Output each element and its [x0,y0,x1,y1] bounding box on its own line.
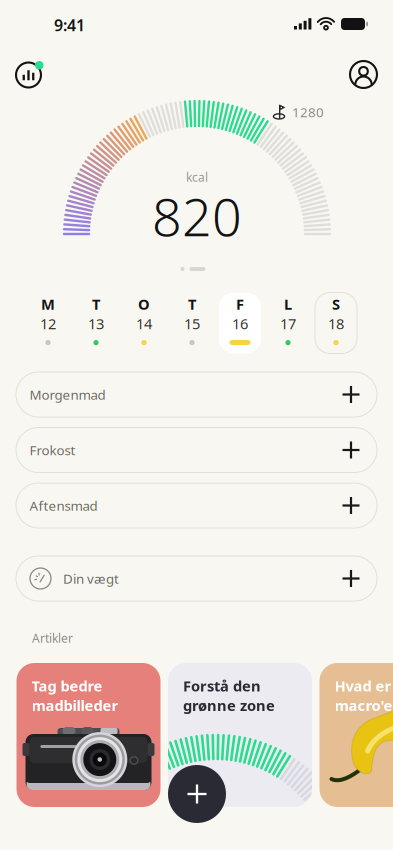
button[interactable]: O [120,291,168,355]
staticText: Tag bedre madbilleder [31,676,118,715]
button[interactable]: M [24,291,72,355]
button[interactable]: F [216,291,264,355]
staticText: 1280 [292,103,324,121]
button[interactable]: Hvad er macro'er [319,663,393,807]
button[interactable]: Profil [350,61,377,88]
staticText: F [236,294,244,314]
staticText: Frokost [29,441,75,459]
button[interactable]: T [168,291,216,355]
button[interactable]: Statistik [16,61,46,89]
staticText: M [41,294,55,314]
staticText: 14 [136,314,152,333]
staticText: 9:41 [54,14,85,36]
button[interactable]: Din vægt [16,556,377,601]
staticText: Artikler [32,630,73,646]
button[interactable]: Aftensmad [16,483,377,528]
staticText: 12 [40,314,56,333]
staticText: kcal [186,169,208,185]
button[interactable]: Morgenmad [16,372,377,417]
button[interactable]: S [312,291,360,355]
button[interactable]: Tilføj [168,765,226,823]
button[interactable]: Tag bedre madbilleder [16,663,160,807]
staticText: 820 [152,181,242,251]
staticText: 13 [88,314,104,333]
staticText: Hvad er macro'er [334,676,393,715]
button[interactable]: L [264,291,312,355]
staticText: L [284,294,292,314]
staticText: 17 [280,314,296,333]
staticText: Forstå den grønne zone [183,676,275,715]
button[interactable]: Frokost [16,427,377,472]
staticText: Din vægt [63,570,119,587]
staticText: 15 [184,314,200,333]
staticText: O [138,294,150,314]
staticText: 18 [328,314,344,333]
button[interactable]: Forstå den grønne zone [168,663,312,807]
staticText: Aftensmad [29,497,97,514]
staticText: 16 [232,314,248,333]
staticText: T [92,294,100,314]
staticText: T [188,294,196,314]
staticText: S [332,294,340,314]
button[interactable]: T [72,291,120,355]
staticText: Morgenmad [29,386,105,403]
